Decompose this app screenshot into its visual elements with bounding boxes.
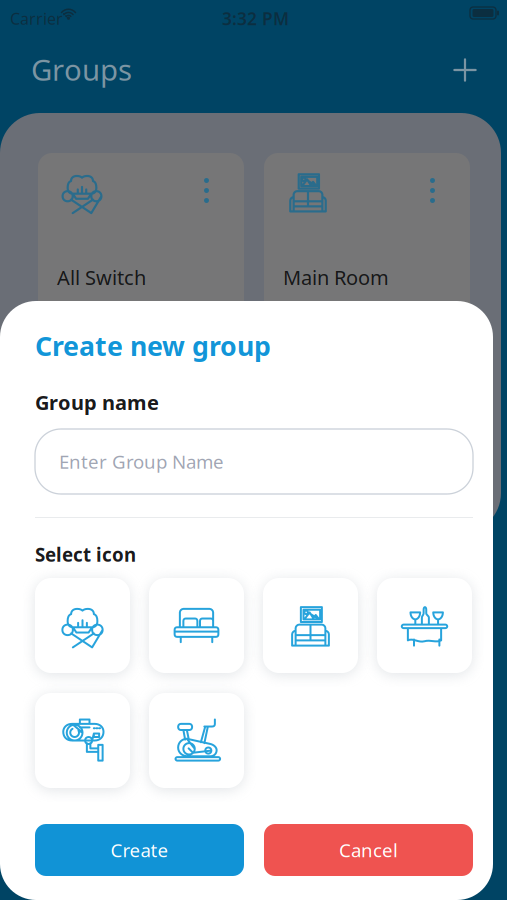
button[interactable]: Select icon <box>149 693 244 788</box>
button[interactable]: Create <box>35 824 244 876</box>
staticText: All Switch <box>57 264 146 291</box>
staticText: Create new group <box>35 328 271 363</box>
staticText: Cancel <box>339 838 398 862</box>
staticText: Enter Group Name <box>59 449 224 474</box>
button[interactable]: All Switch <box>38 153 244 333</box>
staticText: Select icon <box>35 542 136 567</box>
button[interactable]: Select icon <box>377 578 472 673</box>
button[interactable]: Main Room <box>264 153 470 333</box>
staticText: Carrier <box>10 8 63 29</box>
button[interactable]: Select icon <box>35 578 130 673</box>
button[interactable]: Add group <box>443 48 487 92</box>
button[interactable]: Select icon <box>263 578 358 673</box>
staticText: Create <box>110 838 168 862</box>
staticText: Groups <box>31 50 132 89</box>
button[interactable]: Select icon <box>149 578 244 673</box>
button[interactable]: Cancel <box>264 824 473 876</box>
staticText: Main Room <box>283 264 389 291</box>
staticText: Group name <box>35 389 159 416</box>
button[interactable]: Select icon <box>35 693 130 788</box>
staticText: 3:32 PM <box>222 7 289 30</box>
